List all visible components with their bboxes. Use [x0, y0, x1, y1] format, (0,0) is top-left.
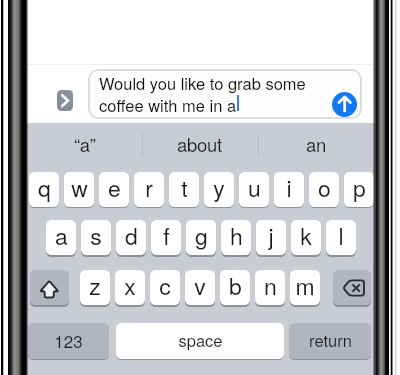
staticText: a: [55, 220, 68, 252]
button[interactable]: z: [80, 270, 110, 305]
button[interactable]: [57, 90, 73, 111]
staticText: f: [163, 220, 170, 252]
button[interactable]: c: [150, 270, 180, 305]
staticText: g: [195, 220, 208, 252]
staticText: s: [90, 220, 102, 252]
button[interactable]: space: [116, 323, 284, 359]
staticText: j: [268, 220, 274, 252]
staticText: d: [125, 220, 138, 252]
staticText: i: [286, 172, 292, 204]
button[interactable]: e: [99, 172, 129, 207]
button[interactable]: o: [309, 172, 339, 207]
button[interactable]: d: [116, 220, 146, 255]
staticText: space: [178, 328, 223, 352]
staticText: v: [194, 270, 206, 302]
button[interactable]: [333, 270, 371, 305]
button[interactable]: r: [134, 172, 164, 207]
button[interactable]: p: [344, 172, 374, 207]
staticText: y: [213, 172, 225, 204]
staticText: p: [353, 172, 366, 204]
button[interactable]: h: [221, 220, 251, 255]
staticText: return: [309, 328, 352, 352]
staticText: u: [248, 172, 261, 204]
staticText: about: [177, 131, 222, 157]
button[interactable]: m: [290, 270, 320, 305]
button[interactable]: u: [239, 172, 269, 207]
button[interactable]: a: [46, 220, 76, 255]
button[interactable]: g: [186, 220, 216, 255]
staticText: m: [295, 270, 315, 302]
button[interactable]: 123: [28, 323, 109, 359]
staticText: l: [338, 220, 344, 252]
button[interactable]: i: [274, 172, 304, 207]
button[interactable]: v: [185, 270, 215, 305]
button[interactable]: s: [81, 220, 111, 255]
staticText: r: [145, 172, 153, 204]
staticText: e: [108, 172, 121, 204]
button[interactable]: w: [64, 172, 94, 207]
staticText: t: [181, 172, 188, 204]
button[interactable]: [88, 69, 362, 119]
button[interactable]: [332, 92, 357, 117]
staticText: n: [264, 270, 277, 302]
button[interactable]: q: [29, 172, 59, 207]
staticText: “a”: [74, 131, 96, 157]
staticText: b: [229, 270, 242, 302]
button[interactable]: n: [255, 270, 285, 305]
button[interactable]: “a”: [27, 126, 142, 165]
staticText: an: [306, 131, 326, 157]
button[interactable]: an: [258, 126, 373, 165]
staticText: Would you like to grab some coffee with …: [99, 71, 306, 116]
button[interactable]: f: [151, 220, 181, 255]
button[interactable]: x: [115, 270, 145, 305]
staticText: o: [318, 172, 331, 204]
button[interactable]: t: [169, 172, 199, 207]
button[interactable]: b: [220, 270, 250, 305]
staticText: w: [71, 172, 88, 204]
staticText: c: [159, 270, 171, 302]
button[interactable]: [30, 270, 69, 305]
staticText: 123: [54, 328, 83, 352]
button[interactable]: l: [326, 220, 356, 255]
button[interactable]: about: [142, 126, 257, 165]
staticText: q: [38, 172, 51, 204]
button[interactable]: y: [204, 172, 234, 207]
staticText: h: [230, 220, 243, 252]
staticText: z: [89, 270, 101, 302]
staticText: k: [300, 220, 312, 252]
button[interactable]: return: [289, 323, 371, 359]
button[interactable]: j: [256, 220, 286, 255]
staticText: x: [124, 270, 136, 302]
button[interactable]: k: [291, 220, 321, 255]
